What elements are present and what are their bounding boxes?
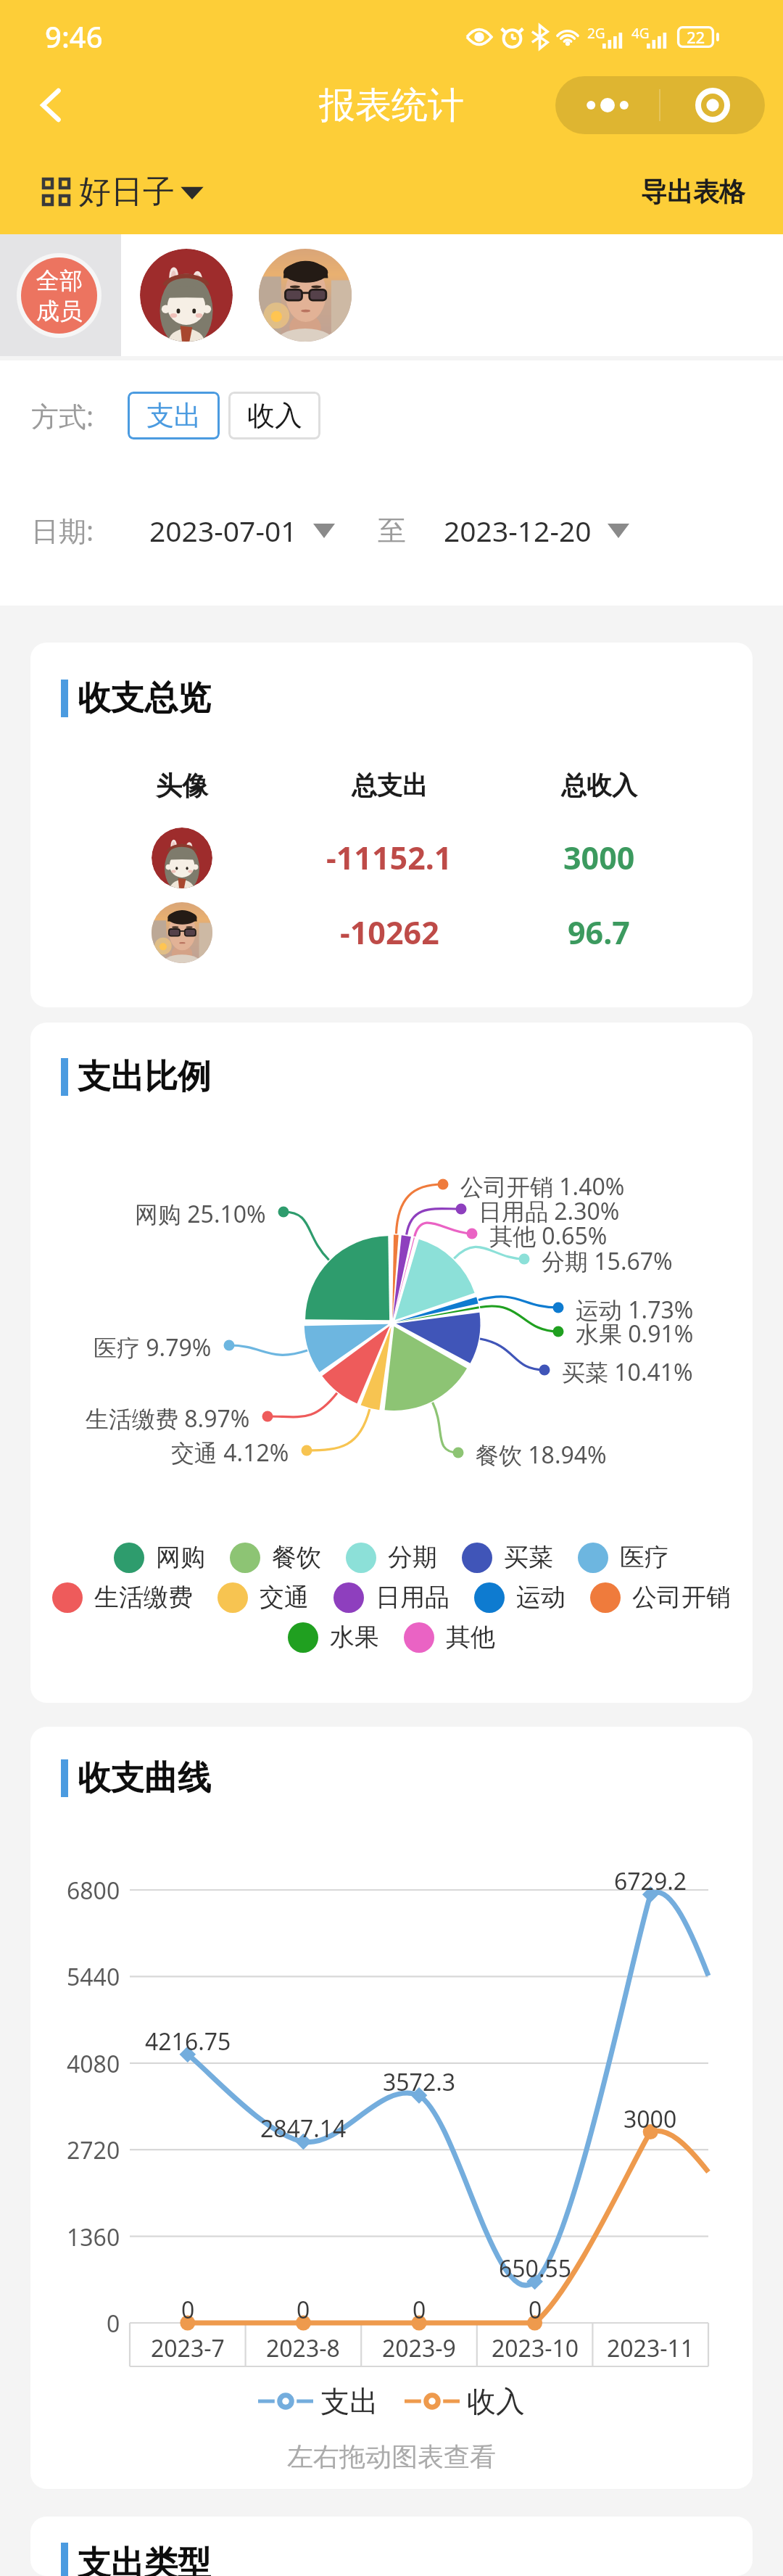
button[interactable]: Back (20, 78, 74, 132)
staticText: 3572.3 (383, 2066, 456, 2098)
staticText: 2023-9 (382, 2332, 456, 2364)
staticText: 6800 (67, 1875, 120, 1907)
staticText: 头像 (156, 769, 208, 802)
staticText: 5440 (67, 1961, 120, 1993)
staticText: 分期 15.67% (542, 1245, 673, 1277)
staticText: 4080 (67, 2048, 120, 2080)
staticText: 其他 (446, 1622, 495, 1653)
staticText: 买菜 (504, 1542, 553, 1573)
staticText: 医疗 9.79% (94, 1332, 212, 1363)
button[interactable]: 2023-12-20 (444, 511, 629, 550)
staticText: 收入 (467, 2383, 525, 2419)
button[interactable]: 导出表格 (641, 176, 745, 208)
staticText: 2023-7 (151, 2332, 225, 2364)
staticText: 买菜 10.41% (562, 1356, 693, 1388)
staticText: 0 (181, 2294, 195, 2326)
staticText: 运动 (516, 1582, 565, 1613)
staticText: 2023-12-20 (444, 511, 592, 550)
staticText: -11152.1 (326, 836, 452, 879)
button[interactable]: 好日子 (42, 172, 204, 212)
staticText: 日期: (31, 511, 94, 549)
staticText: 左右拖动图表查看 (287, 2440, 496, 2473)
staticText: 公司开销 (632, 1582, 731, 1613)
staticText: 交通 (260, 1582, 309, 1613)
staticText: 2023-10 (492, 2332, 579, 2364)
staticText: 其他 0.65% (489, 1220, 608, 1252)
button[interactable]: 2023-07-01 (149, 511, 335, 550)
button[interactable]: 支出 (128, 392, 220, 439)
button[interactable]: Member 1 (140, 249, 233, 342)
staticText: 支出比例 (78, 1056, 211, 1098)
staticText: 生活缴费 8.97% (86, 1403, 250, 1434)
staticText: 2023-11 (607, 2332, 695, 2364)
button[interactable]: 运动 (474, 1582, 565, 1613)
button[interactable]: 收入 (405, 2383, 525, 2419)
staticText: 3000 (563, 836, 635, 879)
staticText: 1360 (67, 2221, 120, 2253)
button[interactable]: 网购 (114, 1542, 205, 1573)
staticText: 9:46 (45, 17, 103, 56)
staticText: 支出 (320, 2383, 378, 2419)
staticText: 4216.75 (145, 2026, 231, 2057)
staticText: 0 (413, 2294, 426, 2326)
staticText: 650.55 (499, 2253, 572, 2284)
staticText: 餐饮 (272, 1542, 321, 1573)
staticText: 总收入 (561, 769, 637, 801)
staticText: 报表统计 (319, 83, 464, 128)
staticText: 2023-07-01 (149, 511, 297, 550)
staticText: 96.7 (568, 911, 630, 954)
staticText: 日用品 2.30% (478, 1195, 620, 1227)
staticText: 水果 0.91% (576, 1318, 694, 1350)
staticText: -10262 (340, 911, 439, 954)
staticText: 0 (297, 2294, 310, 2326)
staticText: 公司开销 1.40% (460, 1171, 625, 1202)
staticText: 6729.2 (614, 1865, 687, 1897)
button[interactable]: 餐饮 (230, 1542, 321, 1573)
button[interactable]: 水果 (288, 1622, 379, 1653)
staticText: 0 (529, 2294, 542, 2326)
staticText: 2G (587, 24, 605, 43)
button[interactable]: 公司开销 (590, 1582, 731, 1613)
staticText: 成员 (36, 297, 83, 326)
staticText: 22 (687, 26, 705, 48)
button[interactable]: 日用品 (333, 1582, 449, 1613)
button[interactable]: 交通 (217, 1582, 309, 1613)
button[interactable]: 分期 (346, 1542, 437, 1573)
staticText: 分期 (388, 1542, 437, 1573)
staticText: 日用品 (376, 1582, 449, 1613)
staticText: 总支出 (352, 769, 428, 801)
staticText: 餐饮 18.94% (476, 1439, 607, 1471)
button[interactable]: 买菜 (462, 1542, 553, 1573)
staticText: 收支总览 (78, 677, 211, 719)
button[interactable]: 支出 (258, 2383, 378, 2419)
staticText: 至 (378, 513, 406, 548)
staticText: 医疗 (620, 1542, 669, 1573)
button[interactable]: 全部 (0, 234, 121, 356)
staticText: 收入 (247, 398, 302, 433)
button[interactable]: More (555, 76, 659, 134)
staticText: 网购 25.10% (135, 1198, 266, 1230)
staticText: 方式: (31, 397, 94, 434)
staticText: 交通 4.12% (171, 1437, 289, 1469)
staticText: 网购 (156, 1542, 205, 1573)
button[interactable]: 其他 (404, 1622, 495, 1653)
staticText: 生活缴费 (94, 1582, 193, 1613)
staticText: 支出 (146, 398, 202, 433)
button[interactable]: Member 2 (259, 249, 352, 342)
staticText: 2847.14 (260, 2113, 347, 2144)
button[interactable]: Close (660, 76, 765, 134)
staticText: 全部 (36, 266, 83, 295)
staticText: 水果 (330, 1622, 379, 1653)
button[interactable]: 生活缴费 (52, 1582, 193, 1613)
staticText: 2023-8 (266, 2332, 340, 2364)
button[interactable]: 收入 (228, 392, 320, 439)
button[interactable]: 医疗 (578, 1542, 669, 1573)
staticText: 2720 (67, 2134, 120, 2166)
staticText: 0 (107, 2308, 120, 2340)
staticText: 4G (631, 24, 650, 43)
staticText: 导出表格 (641, 176, 745, 208)
staticText: 支出类型 (78, 2543, 211, 2576)
staticText: 运动 1.73% (576, 1294, 694, 1326)
staticText: 3000 (623, 2103, 677, 2135)
staticText: 好日子 (79, 172, 175, 212)
